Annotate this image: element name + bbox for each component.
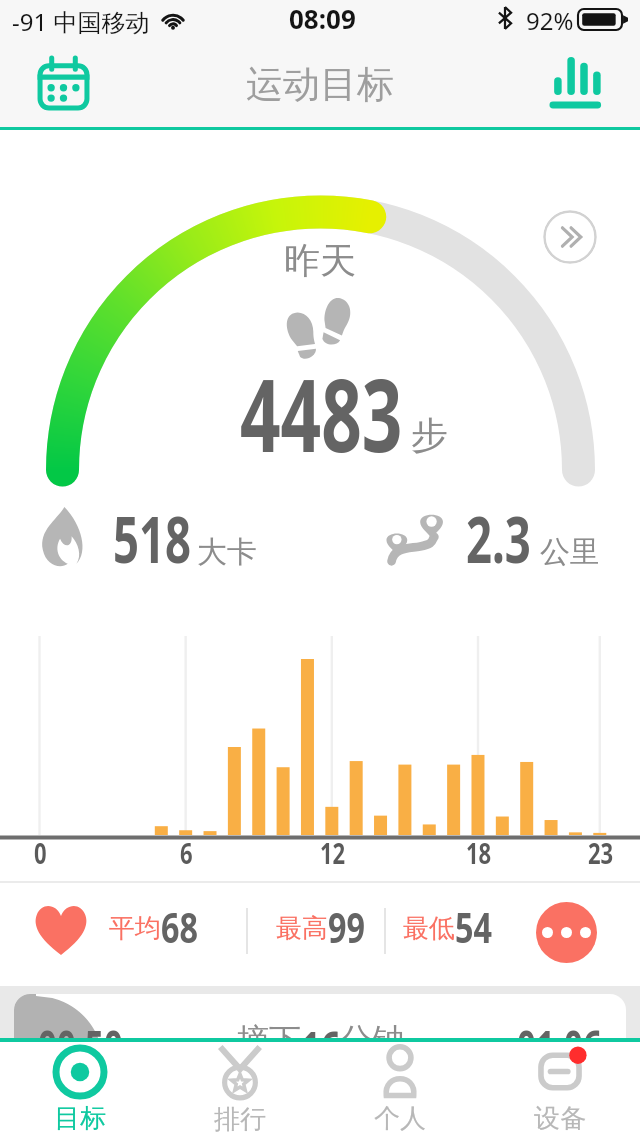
staticText: 23: [588, 833, 614, 872]
staticText: 01:06: [517, 1016, 602, 1038]
staticText: 00:50: [38, 1016, 123, 1038]
staticText: 个人: [374, 1102, 426, 1135]
staticText: 0: [34, 833, 47, 872]
staticText: 518: [113, 495, 191, 582]
staticText: 运动目标: [246, 61, 394, 108]
staticText: 步: [411, 412, 448, 459]
button[interactable]: Statistics: [510, 44, 640, 127]
button[interactable]: 排行: [160, 1042, 320, 1136]
staticText: 68: [161, 898, 199, 955]
staticText: 分钟: [340, 1020, 404, 1038]
staticText: 4483: [240, 345, 403, 481]
staticText: 08:09: [289, 1, 356, 36]
staticText: 公里: [540, 533, 600, 571]
staticText: 6: [180, 833, 193, 872]
staticText: 18: [466, 833, 492, 872]
button[interactable]: 00:50: [14, 994, 626, 1038]
staticText: 昨天: [284, 238, 356, 283]
staticText: 99: [328, 898, 366, 955]
staticText: 大卡: [197, 533, 257, 571]
button[interactable]: More: [536, 902, 597, 963]
staticText: 54: [455, 898, 493, 955]
staticText: -91 中国移动: [12, 5, 150, 38]
button[interactable]: 目标: [0, 1042, 160, 1136]
staticText: 排行: [214, 1103, 266, 1136]
button[interactable]: 个人: [320, 1042, 480, 1136]
staticText: 12: [320, 833, 346, 872]
staticText: 设备: [534, 1102, 586, 1135]
staticText: 92%: [526, 4, 574, 37]
button[interactable]: Calendar: [0, 44, 130, 127]
staticText: 最高: [276, 912, 328, 945]
staticText: 16: [301, 1016, 341, 1038]
staticText: 摘下: [237, 1020, 301, 1038]
staticText: 2.3: [466, 495, 531, 582]
staticText: 最低: [403, 912, 455, 945]
staticText: 目标: [54, 1102, 106, 1135]
staticText: 平均: [109, 912, 161, 945]
button[interactable]: Next: [543, 210, 597, 264]
button[interactable]: 设备: [480, 1042, 640, 1136]
